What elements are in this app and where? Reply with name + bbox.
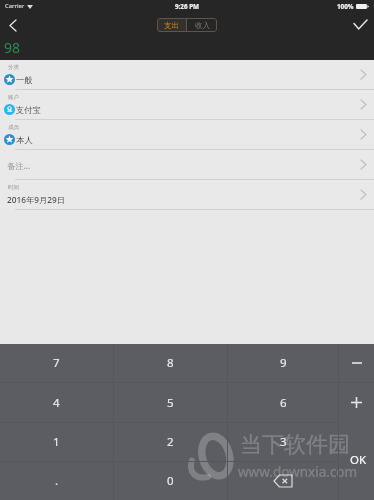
staticText: 一般: [16, 75, 33, 85]
button[interactable]: 分类: [0, 60, 374, 90]
button[interactable]: Back: [0, 12, 26, 38]
staticText: 支出: [164, 21, 179, 30]
button[interactable]: 0: [114, 461, 227, 500]
button[interactable]: 支出: [157, 18, 186, 32]
staticText: 9: [280, 355, 287, 371]
button[interactable]: 备注...: [0, 150, 374, 180]
button[interactable]: Minus: [339, 344, 374, 382]
staticText: 分类: [8, 64, 19, 71]
button[interactable]: 收入: [187, 18, 217, 32]
button[interactable]: 时间: [0, 180, 374, 210]
staticText: 3: [280, 434, 287, 450]
staticText: 8: [167, 355, 174, 371]
button[interactable]: 1: [0, 422, 113, 461]
staticText: 0: [167, 473, 174, 489]
staticText: .: [55, 473, 59, 489]
staticText: 本人: [16, 135, 33, 145]
staticText: Carrier: [5, 2, 25, 10]
button[interactable]: 3: [228, 422, 338, 461]
button[interactable]: 7: [0, 344, 113, 382]
staticText: 100%: [337, 2, 354, 11]
staticText: 成员: [8, 124, 19, 131]
staticText: 当下软件园: [240, 431, 350, 459]
button[interactable]: 5: [114, 383, 227, 422]
button[interactable]: 8: [114, 344, 227, 382]
staticText: 6: [280, 395, 287, 411]
staticText: 98: [4, 38, 21, 56]
staticText: 时间: [8, 184, 19, 191]
staticText: 2016年9月29日: [7, 194, 66, 205]
staticText: 2: [167, 434, 174, 450]
staticText: 支付宝: [16, 105, 41, 115]
button[interactable]: 9: [228, 344, 338, 382]
staticText: 账户: [8, 94, 19, 101]
button[interactable]: 成员: [0, 120, 374, 150]
button[interactable]: Delete: [228, 461, 338, 500]
staticText: www.downxia.com: [238, 463, 358, 481]
staticText: 7: [53, 355, 60, 371]
button[interactable]: 6: [228, 383, 338, 422]
staticText: 备注...: [7, 160, 31, 171]
button[interactable]: 4: [0, 383, 113, 422]
button[interactable]: Confirm: [346, 11, 374, 37]
staticText: 9:26 PM: [175, 2, 200, 11]
button[interactable]: Plus: [339, 383, 374, 422]
staticText: 1: [53, 434, 60, 450]
staticText: OK: [350, 452, 367, 468]
staticText: 4: [53, 395, 60, 411]
button[interactable]: OK: [339, 422, 374, 500]
staticText: 5: [167, 395, 174, 411]
button[interactable]: 账户: [0, 90, 374, 120]
staticText: 收入: [195, 21, 210, 30]
button[interactable]: 2: [114, 422, 227, 461]
